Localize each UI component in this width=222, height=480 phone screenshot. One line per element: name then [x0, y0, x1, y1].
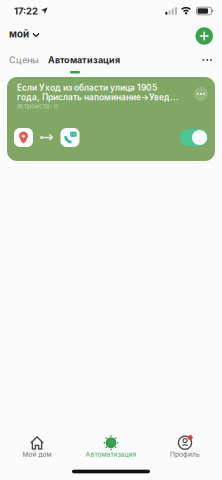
button[interactable]: Профиль	[148, 438, 222, 460]
button[interactable]: мой	[9, 28, 39, 40]
staticText: Устройств: 0	[17, 103, 58, 110]
button[interactable]: Включено	[180, 129, 208, 146]
button[interactable]: Мой дом	[0, 438, 74, 460]
button[interactable]: Ещё	[202, 55, 212, 65]
button[interactable]: Добавить	[195, 27, 213, 45]
staticText: Автоматизация	[85, 450, 136, 458]
button[interactable]: Если Уход из области улица 1905 года, Пр…	[7, 77, 215, 161]
button[interactable]: Сцены	[9, 54, 39, 65]
button[interactable]: Ещё	[194, 87, 208, 101]
staticText: Мой дом	[22, 450, 51, 458]
button[interactable]: Автоматизация	[39, 54, 120, 65]
staticText: Сцены	[9, 54, 39, 65]
staticText: Если Уход из области улица 1905 года, Пр…	[17, 83, 179, 102]
staticText: Профиль	[170, 450, 200, 458]
staticText: мой	[9, 28, 29, 40]
button[interactable]: Автоматизация	[74, 438, 148, 460]
staticText: Автоматизация	[48, 54, 120, 65]
staticText: 17:22	[14, 5, 38, 17]
